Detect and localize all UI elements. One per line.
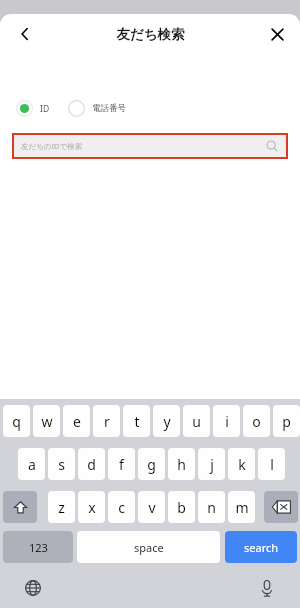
button[interactable]: z: [48, 491, 75, 523]
button[interactable]: Shift: [3, 491, 37, 523]
staticText: y: [163, 412, 171, 431]
staticText: b: [177, 498, 186, 517]
staticText: c: [118, 498, 125, 517]
staticText: l: [270, 455, 274, 474]
button[interactable]: a: [18, 448, 45, 480]
button[interactable]: y: [153, 405, 180, 437]
button[interactable]: p: [273, 405, 300, 437]
button[interactable]: search: [225, 531, 297, 563]
button[interactable]: v: [138, 491, 165, 523]
staticText: a: [28, 455, 36, 474]
button[interactable]: i: [213, 405, 240, 437]
button[interactable]: ID: [16, 100, 50, 117]
staticText: g: [147, 455, 156, 474]
other: Search: [264, 138, 280, 154]
staticText: r: [104, 412, 110, 431]
button[interactable]: Voice input: [256, 577, 278, 599]
button[interactable]: space: [77, 531, 220, 563]
button[interactable]: 友だちのIDで検索: [14, 135, 286, 157]
staticText: i: [225, 412, 229, 431]
button[interactable]: Close: [260, 17, 294, 51]
button[interactable]: 電話番号: [68, 100, 126, 117]
button[interactable]: t: [123, 405, 150, 437]
button[interactable]: c: [108, 491, 135, 523]
button[interactable]: 123: [3, 531, 73, 563]
staticText: d: [87, 455, 96, 474]
button[interactable]: x: [78, 491, 105, 523]
staticText: 友だちのIDで検索: [21, 141, 83, 151]
button[interactable]: d: [78, 448, 105, 480]
button[interactable]: e: [63, 405, 90, 437]
button[interactable]: n: [198, 491, 225, 523]
staticText: p: [282, 412, 291, 431]
staticText: s: [58, 455, 65, 474]
button[interactable]: s: [48, 448, 75, 480]
staticText: h: [177, 455, 186, 474]
staticText: 123: [29, 540, 48, 555]
button[interactable]: l: [258, 448, 285, 480]
button[interactable]: b: [168, 491, 195, 523]
staticText: o: [252, 412, 261, 431]
staticText: m: [235, 498, 249, 517]
button[interactable]: f: [108, 448, 135, 480]
staticText: z: [58, 498, 65, 517]
button[interactable]: j: [198, 448, 225, 480]
button[interactable]: u: [183, 405, 210, 437]
button[interactable]: k: [228, 448, 255, 480]
button[interactable]: r: [93, 405, 120, 437]
staticText: 電話番号: [92, 103, 126, 114]
staticText: j: [210, 455, 214, 474]
staticText: 友だち検索: [116, 26, 185, 43]
staticText: f: [119, 455, 124, 474]
button[interactable]: Change keyboard language: [22, 577, 44, 599]
button[interactable]: Back: [8, 17, 42, 51]
staticText: ID: [40, 103, 50, 115]
staticText: search: [244, 540, 279, 555]
staticText: e: [73, 412, 81, 431]
staticText: k: [238, 455, 246, 474]
staticText: x: [88, 498, 96, 517]
staticText: v: [148, 498, 156, 517]
button[interactable]: g: [138, 448, 165, 480]
staticText: q: [12, 412, 21, 431]
staticText: n: [207, 498, 216, 517]
staticText: w: [41, 412, 53, 431]
staticText: u: [192, 412, 201, 431]
button[interactable]: w: [33, 405, 60, 437]
button[interactable]: q: [3, 405, 30, 437]
button[interactable]: Backspace: [264, 491, 298, 523]
button[interactable]: h: [168, 448, 195, 480]
button[interactable]: o: [243, 405, 270, 437]
button[interactable]: m: [228, 491, 255, 523]
staticText: t: [134, 412, 140, 431]
staticText: space: [134, 540, 164, 555]
